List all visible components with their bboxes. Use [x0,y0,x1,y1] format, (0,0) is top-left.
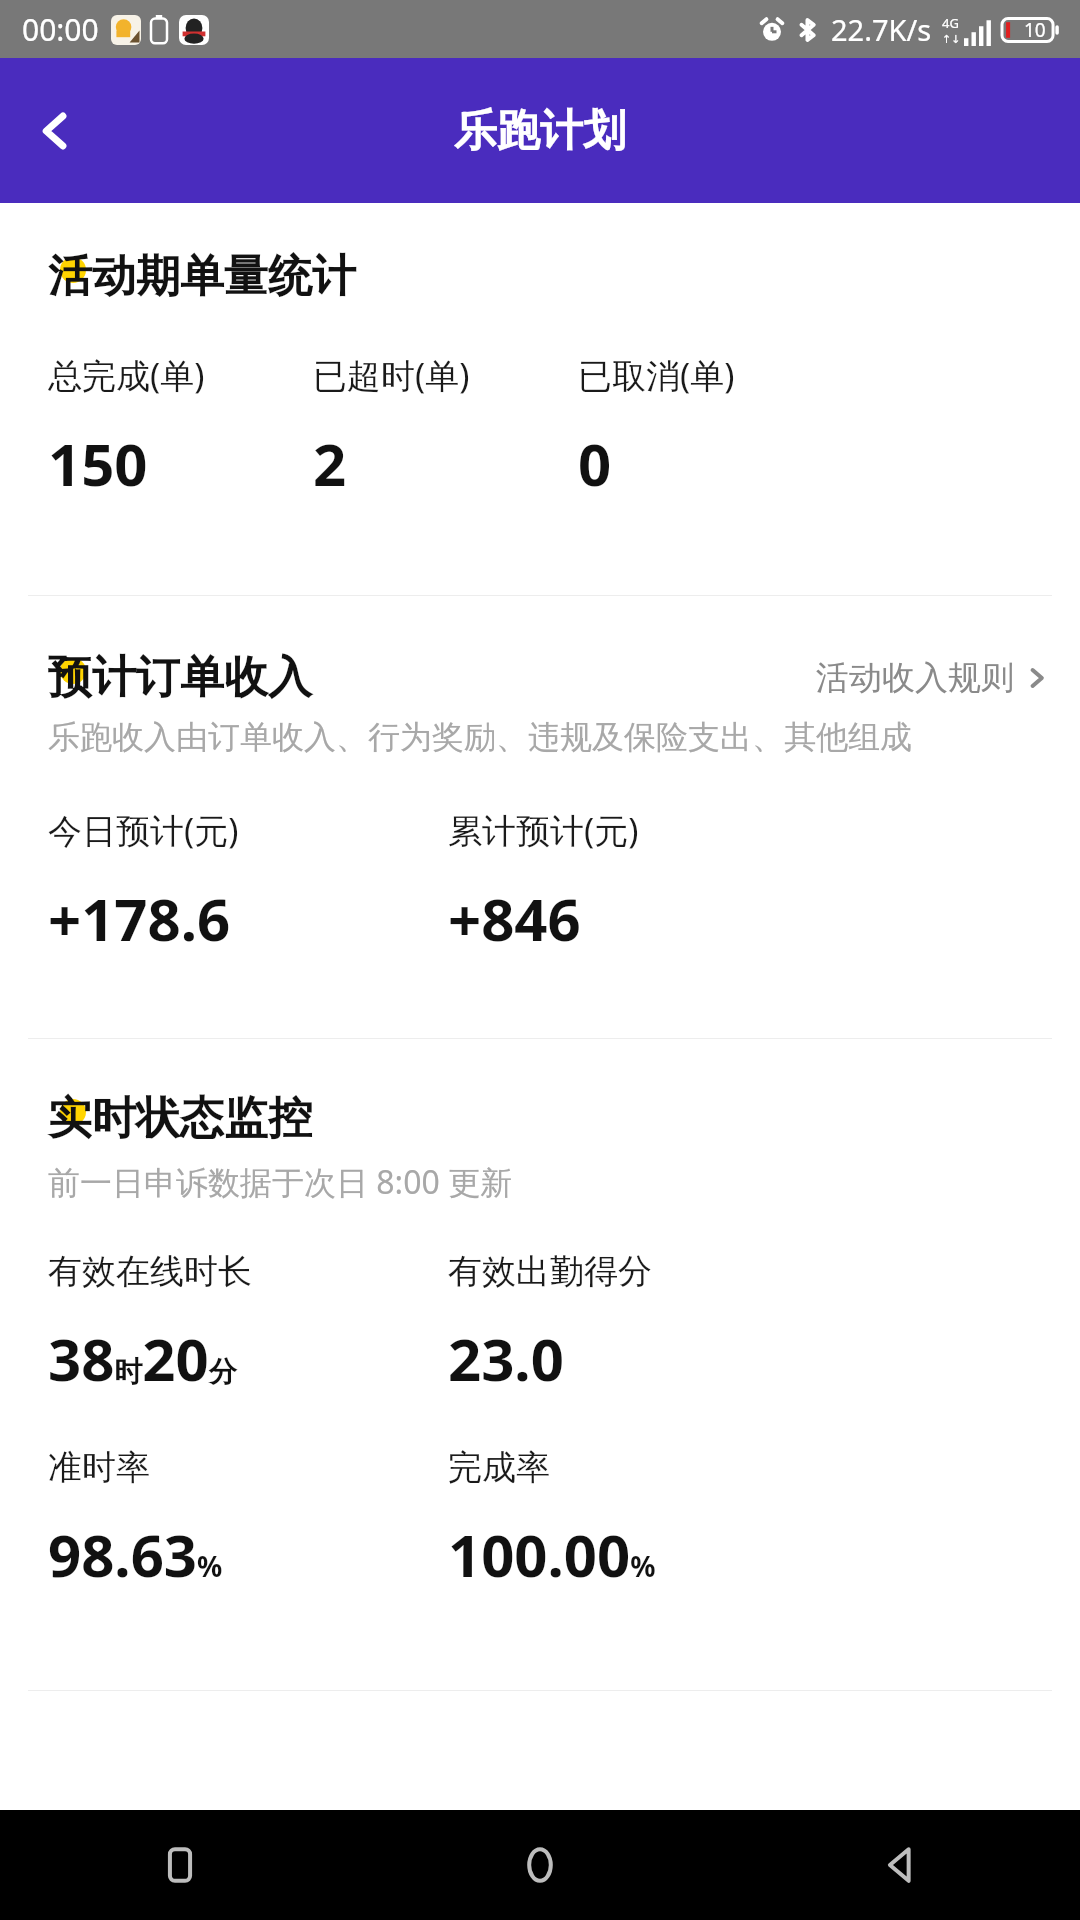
button[interactable]: Back [720,1810,1080,1920]
button[interactable]: 活动收入规则 [812,653,1052,703]
button[interactable]: Recent apps [0,1810,360,1920]
staticText: 0 [578,424,612,503]
staticText: 38时20分 [48,1319,237,1398]
staticText: 22.7K/s [831,10,932,49]
staticText: 2 [313,424,347,503]
button[interactable]: Home [360,1810,720,1920]
staticText: 今日预计(元) [48,807,239,853]
staticText: 预计订单收入 [48,650,312,705]
staticText: 有效在线时长 [48,1250,252,1293]
staticText: 150 [48,424,148,503]
staticText: 总完成(单) [48,352,205,398]
staticText: 有效出勤得分 [448,1250,652,1293]
staticText: +846 [448,879,581,958]
staticText: 4G [942,14,959,32]
staticText: 完成率 [448,1446,550,1489]
staticText: 23.0 [448,1319,564,1398]
staticText: 准时率 [48,1446,150,1489]
staticText: 已取消(单) [578,352,735,398]
staticText: 已超时(单) [313,352,470,398]
staticText: 实时状态监控 [48,1091,312,1146]
staticText: 10 [1024,17,1046,43]
button[interactable]: Back [0,76,110,186]
staticText: 100.00% [448,1515,656,1594]
staticText: 乐跑计划 [454,104,626,158]
staticText: +178.6 [48,879,231,958]
staticText: 活动收入规则 [816,657,1014,699]
staticText: 乐跑收入由订单收入、行为奖励、违规及保险支出、其他组成 [48,717,912,757]
staticText: 累计预计(元) [448,807,639,853]
staticText: 活动期单量统计 [48,249,356,304]
staticText: 前一日申诉数据于次日 8:00 更新 [48,1160,513,1204]
staticText: 98.63% [48,1515,223,1594]
staticText: 00:00 [22,9,99,50]
staticText: ↑↓ [942,33,961,46]
